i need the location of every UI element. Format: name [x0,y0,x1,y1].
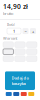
staticText: Wariant [3,36,17,41]
button[interactable]: Zmniejsz [22,28,28,34]
staticText: − [24,28,26,34]
staticText: 14,90 zł [3,2,28,11]
staticText: brutto [3,11,13,16]
staticText: 1 [13,28,15,34]
button[interactable]: Opcja [3,49,13,54]
button[interactable]: Zwiększ [30,28,36,34]
staticText: Ilość [7,22,15,27]
staticText: + [32,28,34,34]
button[interactable]: Dodaj do koszyka [5,71,35,90]
staticText: Dodaj do koszyka [11,75,28,86]
